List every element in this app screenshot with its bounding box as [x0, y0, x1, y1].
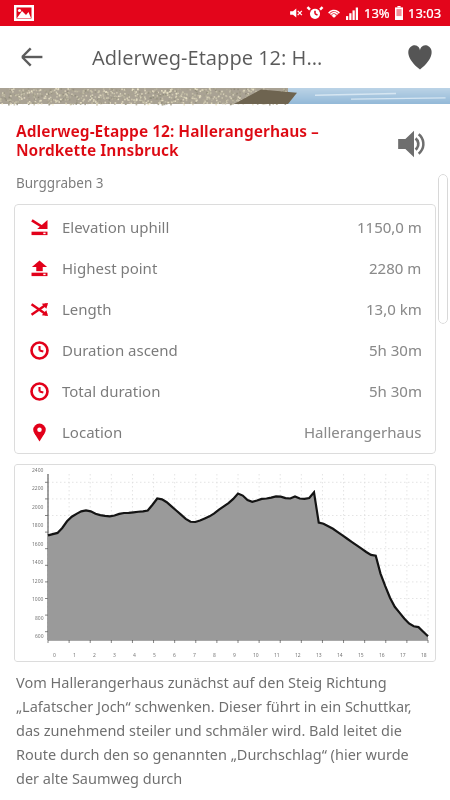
staticText: Duration ascend	[62, 340, 178, 360]
staticText: 11	[274, 652, 280, 659]
staticText: 800	[35, 615, 44, 622]
staticText: 2000	[32, 504, 44, 511]
staticText: 1200	[32, 578, 44, 585]
button[interactable]: Location	[14, 411, 436, 452]
staticText: 600	[35, 633, 44, 640]
button[interactable]: Duration ascend	[14, 329, 436, 370]
staticText: 13,0 km	[366, 299, 422, 319]
staticText: Total duration	[62, 381, 161, 401]
staticText: Hallerangerhaus	[304, 422, 422, 442]
staticText: 1000	[32, 596, 44, 603]
staticText: 13:03	[408, 4, 442, 22]
staticText: 5h 30m	[369, 381, 422, 401]
staticText: Burggraben 3	[16, 174, 104, 192]
staticText: 1600	[32, 541, 44, 548]
staticText: 1	[73, 652, 76, 659]
staticText: 3	[113, 652, 116, 659]
staticText: 5h 30m	[369, 340, 422, 360]
staticText: 7	[193, 652, 196, 659]
staticText: Length	[62, 299, 112, 319]
staticText: 4	[133, 652, 136, 659]
staticText: Elevation uphill	[62, 217, 170, 237]
staticText: 17	[400, 652, 406, 659]
button[interactable]: Back	[8, 33, 56, 81]
staticText: Vom Hallerangerhaus zunächst auf den Ste…	[16, 672, 434, 788]
staticText: 1800	[32, 522, 44, 529]
button[interactable]: Read aloud	[388, 118, 440, 170]
staticText: 13%	[364, 4, 390, 22]
staticText: 15	[358, 652, 364, 659]
button[interactable]: Length	[14, 288, 436, 329]
button[interactable]: Elevation uphill	[14, 206, 436, 247]
button[interactable]: Total duration	[14, 370, 436, 411]
staticText: 2200	[32, 485, 44, 492]
staticText: 5	[153, 652, 156, 659]
staticText: 10	[253, 652, 259, 659]
staticText: 12	[295, 652, 301, 659]
staticText: 1150,0 m	[357, 217, 422, 237]
staticText: 16	[379, 652, 385, 659]
staticText: 14	[337, 652, 343, 659]
staticText: 2400	[32, 467, 44, 474]
staticText: 2	[93, 652, 96, 659]
staticText: 13	[316, 652, 322, 659]
staticText: 2280 m	[369, 258, 422, 278]
staticText: Adlerweg-Etappe 12: H…	[92, 44, 323, 71]
staticText: 9	[233, 652, 236, 659]
staticText: 8	[213, 652, 216, 659]
button[interactable]: Favorite	[396, 33, 444, 81]
staticText: Location	[62, 422, 123, 442]
staticText: 0	[53, 652, 56, 659]
staticText: 18	[421, 652, 427, 659]
staticText: Highest point	[62, 258, 158, 278]
staticText: 1400	[32, 559, 44, 566]
staticText: Adlerweg-Etappe 12: Hallerangerhaus – No…	[16, 120, 388, 160]
staticText: 6	[173, 652, 176, 659]
button[interactable]: Highest point	[14, 247, 436, 288]
